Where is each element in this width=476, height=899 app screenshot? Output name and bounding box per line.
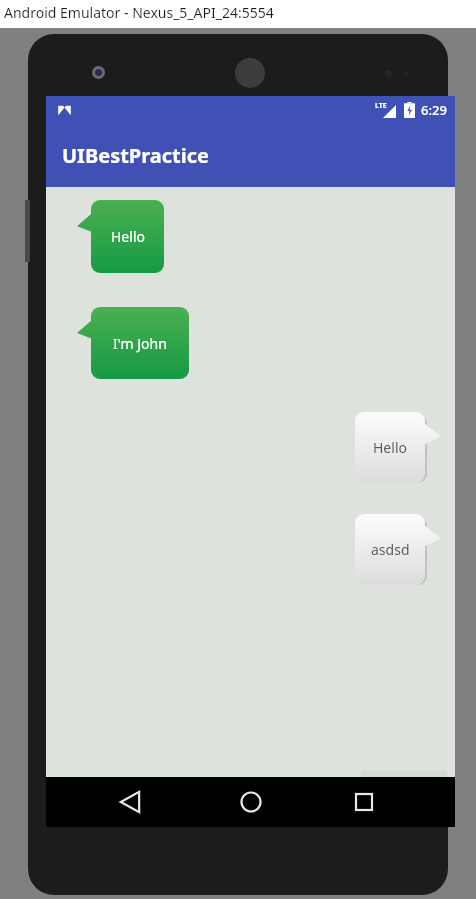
- staticText: Android Emulator - Nexus_5_API_24:5554: [4, 3, 274, 22]
- button[interactable]: I'm John: [77, 307, 189, 379]
- button[interactable]: Recent apps: [347, 785, 381, 819]
- button[interactable]: SEND: [361, 771, 447, 811]
- button[interactable]: Home: [234, 785, 268, 819]
- staticText: LTE: [375, 101, 387, 111]
- button[interactable]: Hello: [77, 200, 164, 273]
- button[interactable]: Hello: [355, 412, 441, 483]
- button[interactable]: UIBestPractice: [46, 124, 455, 187]
- staticText: UIBestPractice: [62, 142, 210, 169]
- button[interactable]: Type something here: [50, 773, 350, 815]
- button[interactable]: Back: [114, 785, 148, 819]
- button[interactable]: asdsd: [355, 514, 441, 585]
- staticText: Hello: [111, 227, 145, 246]
- staticText: 6:29: [421, 101, 447, 119]
- staticText: Type something here: [57, 778, 226, 801]
- staticText: Hello: [373, 438, 407, 457]
- staticText: asdsd: [371, 540, 410, 559]
- staticText: I'm John: [113, 334, 167, 353]
